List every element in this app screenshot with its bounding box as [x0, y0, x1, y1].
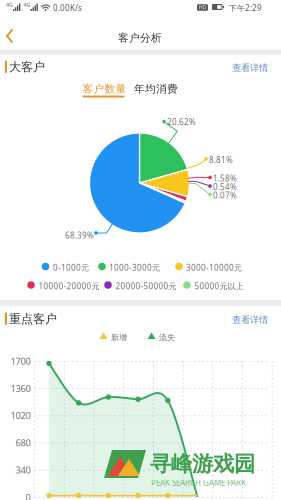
- staticText: HD: [198, 4, 206, 11]
- staticText: 客户分析: [118, 31, 162, 44]
- button[interactable]: 查看详情: [0, 0, 281, 500]
- button[interactable]: 年均消费: [0, 0, 281, 500]
- staticText: 0.00K/s: [53, 3, 82, 13]
- staticText: 4G: [6, 1, 13, 8]
- staticText: 重点客户: [9, 312, 57, 326]
- staticText: 68.39%: [65, 230, 94, 241]
- staticText: 0.54%: [213, 182, 237, 192]
- staticText: 寻峰游戏园: [150, 451, 255, 477]
- staticText: 1.58%: [213, 173, 237, 184]
- button[interactable]: 查看详情: [0, 0, 281, 500]
- staticText: 查看详情: [232, 62, 268, 74]
- staticText: 年均消费: [134, 82, 178, 96]
- staticText: 680: [15, 436, 30, 449]
- staticText: 大客户: [9, 60, 45, 74]
- staticText: 50000元以上: [194, 281, 243, 291]
- staticText: 10000-20000元: [38, 281, 99, 291]
- staticText: 3000-10000元: [186, 262, 242, 273]
- staticText: 流失: [159, 333, 175, 342]
- staticText: 8.81%: [209, 155, 233, 165]
- staticText: 1020: [10, 409, 30, 422]
- staticText: 下午2:29: [229, 3, 262, 13]
- staticText: 340: [15, 464, 30, 476]
- staticText: 查看详情: [232, 314, 268, 326]
- staticText: 20000-50000元: [115, 281, 176, 291]
- staticText: 0-1000元: [53, 262, 89, 273]
- staticText: 0: [25, 491, 30, 500]
- staticText: 新增: [111, 333, 127, 342]
- staticText: 4G: [23, 1, 30, 8]
- button[interactable]: Back: [0, 0, 281, 500]
- staticText: 1700: [10, 355, 30, 367]
- staticText: 0.07%: [213, 190, 237, 201]
- staticText: 客户数量: [82, 82, 126, 96]
- button[interactable]: 客户数量: [0, 0, 281, 500]
- staticText: 1000-3000元: [109, 262, 160, 273]
- staticText: 1360: [10, 382, 30, 394]
- staticText: 20.62%: [167, 117, 196, 127]
- staticText: PEAK SEARCH GAME PARK: [151, 477, 246, 488]
